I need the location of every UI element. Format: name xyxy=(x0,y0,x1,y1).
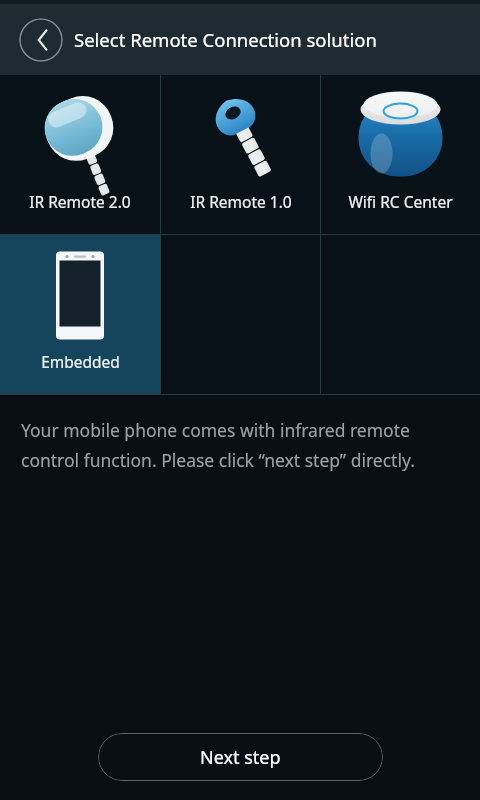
button[interactable]: Back xyxy=(19,18,63,62)
staticText: Next step xyxy=(200,745,281,770)
button[interactable]: IR Remote 1.0 xyxy=(161,75,320,234)
button[interactable]: Wifi RC Center xyxy=(321,75,480,234)
staticText: IR Remote 2.0 xyxy=(29,191,131,212)
staticText: Select Remote Connection solution xyxy=(74,27,377,52)
staticText: Your mobile phone comes with infrared re… xyxy=(21,418,462,472)
button[interactable]: Embedded xyxy=(0,235,160,394)
button[interactable]: Next step xyxy=(98,733,383,781)
staticText: IR Remote 1.0 xyxy=(190,191,292,212)
staticText: Wifi RC Center xyxy=(348,191,453,212)
button[interactable]: IR Remote 2.0 xyxy=(0,75,160,234)
staticText: Embedded xyxy=(41,351,120,372)
